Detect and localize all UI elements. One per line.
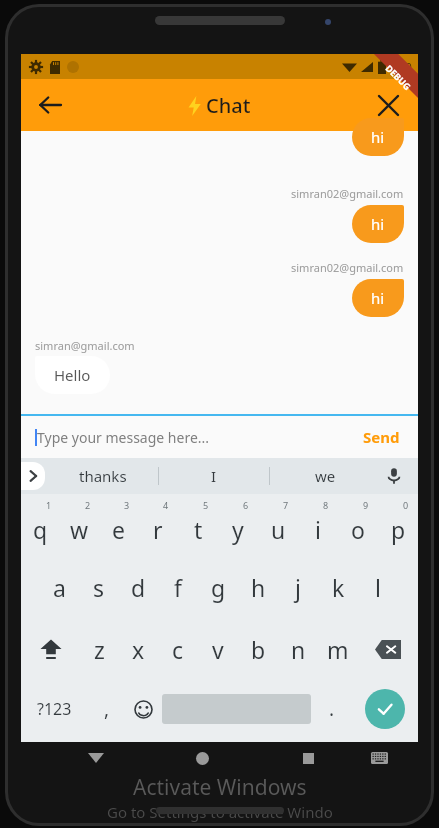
button[interactable]: 4 — [138, 494, 178, 556]
button[interactable]: Voice input — [380, 462, 408, 490]
staticText: 2 — [85, 499, 91, 511]
button[interactable]: Close — [368, 85, 408, 125]
button[interactable]: Enter — [365, 689, 405, 729]
staticText: l — [375, 572, 381, 603]
button[interactable]: Keyboard — [361, 744, 397, 772]
button[interactable]: Back — [29, 84, 71, 126]
button[interactable]: Send — [359, 423, 404, 451]
staticText: 6 — [243, 499, 249, 511]
button[interactable]: 9 — [338, 494, 378, 556]
button[interactable]: Shift — [21, 618, 80, 680]
button[interactable]: 5 — [178, 494, 218, 556]
staticText: DEBUG — [383, 62, 414, 92]
staticText: Go to Settings to activate Windo — [107, 802, 333, 822]
button[interactable]: 2 — [60, 494, 99, 556]
staticText: Hello — [54, 365, 91, 385]
button[interactable]: k — [318, 556, 358, 618]
staticText: , — [104, 696, 110, 722]
button[interactable]: 0 — [378, 494, 418, 556]
button[interactable]: c — [158, 618, 198, 680]
button[interactable]: 7 — [258, 494, 298, 556]
staticText: hi — [371, 214, 385, 234]
button[interactable]: Emoji — [125, 680, 162, 738]
button[interactable]: Home — [149, 744, 255, 772]
button[interactable]: Back — [42, 744, 149, 772]
staticText: 9 — [363, 499, 369, 511]
staticText: ?123 — [37, 698, 72, 720]
staticText: 3 — [124, 499, 130, 511]
staticText: 4 — [163, 499, 169, 511]
staticText: h — [251, 572, 266, 603]
button[interactable]: s — [79, 556, 118, 618]
staticText: Type your message here... — [37, 428, 210, 447]
staticText: d — [131, 572, 146, 603]
staticText: 1 — [46, 499, 52, 511]
staticText: r — [153, 514, 163, 545]
staticText: k — [332, 572, 345, 603]
staticText: Activate Windows — [133, 773, 307, 802]
button[interactable]: Backspace — [358, 618, 418, 680]
staticText: simran02@gmail.com — [291, 186, 404, 201]
button[interactable]: z — [80, 618, 119, 680]
staticText: w — [70, 514, 89, 545]
staticText: b — [251, 634, 266, 665]
button[interactable]: h — [238, 556, 278, 618]
button[interactable]: hi — [352, 279, 404, 317]
button[interactable]: we — [270, 458, 380, 494]
button[interactable]: Hello — [35, 356, 110, 394]
staticText: g — [211, 572, 226, 603]
button[interactable]: l — [358, 556, 398, 618]
button[interactable]: v — [198, 618, 238, 680]
staticText: hi — [371, 288, 385, 308]
button[interactable]: , — [88, 680, 125, 738]
button[interactable]: n — [278, 618, 318, 680]
staticText: Send — [363, 427, 400, 447]
button[interactable]: j — [278, 556, 318, 618]
staticText: q — [33, 514, 48, 545]
staticText: we — [315, 466, 336, 486]
button[interactable]: I — [159, 458, 269, 494]
button[interactable]: b — [238, 618, 278, 680]
staticText: 0 — [403, 499, 409, 511]
staticText: 5 — [203, 499, 209, 511]
button[interactable]: hi — [352, 118, 404, 156]
button[interactable]: g — [198, 556, 238, 618]
staticText: x — [132, 634, 145, 665]
button[interactable]: Recents — [255, 744, 361, 772]
button[interactable]: m — [318, 618, 358, 680]
staticText: o — [351, 514, 365, 545]
button[interactable]: thanks — [47, 458, 158, 494]
staticText: z — [94, 634, 105, 665]
button[interactable]: ?123 — [21, 680, 88, 738]
staticText: e — [112, 514, 125, 545]
button[interactable]: x — [119, 618, 158, 680]
button[interactable]: hi — [352, 205, 404, 243]
button[interactable]: f — [158, 556, 198, 618]
staticText: s — [93, 572, 105, 603]
staticText: f — [174, 572, 182, 603]
staticText: v — [212, 634, 224, 665]
staticText: simran02@gmail.com — [291, 260, 404, 275]
staticText: p — [391, 514, 406, 545]
button[interactable]: Type your message here... — [35, 416, 359, 458]
button[interactable]: More suggestions — [21, 462, 45, 490]
staticText: hi — [371, 127, 385, 147]
button[interactable]: 6 — [218, 494, 258, 556]
staticText: a — [53, 572, 66, 603]
button[interactable]: 3 — [99, 494, 138, 556]
staticText: 1:10 — [390, 59, 412, 74]
staticText: j — [295, 572, 301, 603]
button[interactable]: 1 — [21, 494, 60, 556]
staticText: 7 — [283, 499, 289, 511]
staticText: y — [232, 514, 244, 545]
button[interactable]: d — [118, 556, 158, 618]
button[interactable]: a — [40, 556, 79, 618]
button[interactable]: . — [311, 680, 352, 738]
staticText: t — [194, 514, 203, 545]
staticText: Chat — [206, 92, 251, 119]
button[interactable]: 8 — [298, 494, 338, 556]
staticText: 8 — [323, 499, 329, 511]
staticText: c — [172, 634, 184, 665]
staticText: m — [327, 634, 349, 665]
